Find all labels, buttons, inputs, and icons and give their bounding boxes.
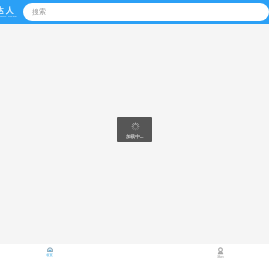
staticText: 首页	[46, 253, 53, 257]
staticText: 达人	[0, 5, 17, 15]
staticText: 加载中...	[126, 133, 144, 139]
staticText: 我的	[217, 255, 224, 258]
button[interactable]: 搜索	[23, 3, 269, 21]
button[interactable]: 首页	[0, 244, 134, 258]
button[interactable]: 我的	[134, 244, 269, 258]
staticText: 搜索	[32, 7, 46, 16]
staticText: DAREN SHOP	[0, 15, 18, 18]
